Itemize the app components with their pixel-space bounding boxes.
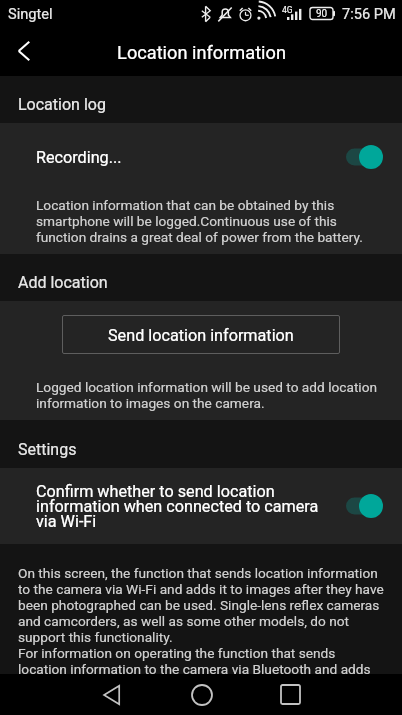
staticText: Singtel — [8, 5, 53, 22]
staticText: Logged location information will be used… — [36, 379, 380, 411]
staticText: Recording... — [36, 146, 336, 167]
staticText: Settings — [18, 440, 77, 459]
button[interactable]: Back — [0, 27, 48, 75]
staticText: 4G — [282, 5, 293, 15]
button[interactable]: Home — [173, 674, 230, 715]
button[interactable]: Confirm whether to send location informa… — [0, 468, 402, 544]
staticText: Location information that can be obtaine… — [36, 197, 366, 245]
staticText: Send location information — [108, 324, 294, 345]
staticText: Location information — [117, 42, 286, 63]
staticText: 7:56 PM — [342, 5, 396, 22]
button[interactable]: Recording... — [0, 123, 402, 190]
staticText: On this screen, the function that sends … — [18, 565, 386, 674]
button[interactable]: Back — [83, 674, 140, 715]
button[interactable]: Send location information — [62, 315, 340, 354]
staticText: Location log — [18, 95, 106, 114]
staticText: Confirm whether to send location informa… — [36, 482, 322, 531]
button[interactable]: Recents — [262, 674, 319, 715]
staticText: 90 — [316, 8, 328, 20]
staticText: Add location — [18, 273, 108, 292]
